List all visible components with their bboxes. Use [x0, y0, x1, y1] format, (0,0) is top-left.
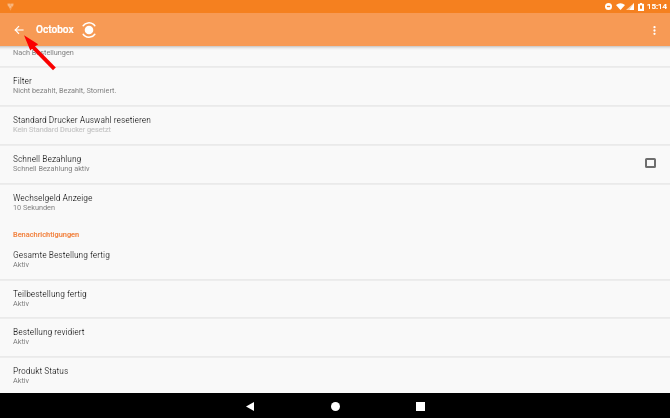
- button[interactable]: Home: [325, 396, 345, 416]
- button[interactable]: Standard Drucker Auswahl resetieren: [0, 106, 670, 144]
- staticText: Kein Standard Drucker gesetzt: [13, 125, 111, 134]
- button[interactable]: More options: [644, 20, 664, 40]
- staticText: Produkt Status: [13, 366, 69, 376]
- button[interactable]: Recent apps: [410, 396, 430, 416]
- staticText: Standard Drucker Auswahl resetieren: [13, 115, 151, 125]
- button[interactable]: Bestellung revidiert: [0, 318, 670, 356]
- button[interactable]: Back: [9, 20, 29, 40]
- staticText: Bestellung revidiert: [13, 327, 85, 337]
- staticText: 15:14: [647, 2, 668, 11]
- button[interactable]: Gesamte Bestellung fertig: [0, 241, 670, 278]
- button[interactable]: Teilbestellung fertig: [0, 280, 670, 318]
- staticText: Nach Bestellungen: [13, 48, 74, 57]
- button[interactable]: Wechselgeld Anzeige: [0, 184, 670, 222]
- staticText: Filter: [13, 76, 32, 86]
- button[interactable]: Schnell Bezahlung: [0, 145, 670, 183]
- button[interactable]: Toggle Schnell Bezahlung: [640, 154, 660, 174]
- staticText: Gesamte Bestellung fertig: [13, 250, 110, 260]
- staticText: 10 Sekunden: [13, 203, 55, 212]
- button[interactable]: Nach Bestellungen: [0, 47, 670, 66]
- staticText: Aktiv: [13, 299, 30, 308]
- button[interactable]: Filter: [0, 67, 670, 105]
- button[interactable]: Produkt Status: [0, 357, 670, 393]
- staticText: Octobox: [36, 24, 74, 36]
- staticText: Teilbestellung fertig: [13, 289, 87, 299]
- staticText: Schnell Bezahlung aktiv: [13, 164, 90, 173]
- staticText: Schnell Bezahlung: [13, 154, 82, 164]
- staticText: Nicht bezahlt, Bezahlt, Storniert.: [13, 86, 117, 95]
- staticText: Wechselgeld Anzeige: [13, 193, 93, 203]
- button[interactable]: Back: [240, 396, 260, 416]
- staticText: Aktiv: [13, 376, 30, 385]
- staticText: Aktiv: [13, 260, 30, 269]
- staticText: Aktiv: [13, 337, 30, 346]
- staticText: Benachrichtigungen: [13, 230, 80, 239]
